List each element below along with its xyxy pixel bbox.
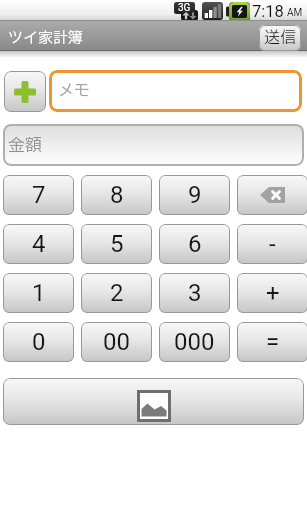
staticText: 9 <box>188 181 202 209</box>
button[interactable]: 9 <box>159 175 230 215</box>
button[interactable]: - <box>237 224 307 264</box>
button[interactable]: 6 <box>159 224 230 264</box>
staticText: 8 <box>110 181 124 209</box>
staticText: 金額 <box>8 133 42 158</box>
button[interactable] <box>3 378 304 425</box>
button[interactable]: 金額 <box>3 124 304 166</box>
staticText: 3G <box>178 2 191 14</box>
staticText: 7:18 <box>252 2 284 21</box>
button[interactable]: 7 <box>3 175 74 215</box>
button[interactable] <box>4 71 46 112</box>
staticText: 4 <box>32 230 46 258</box>
button[interactable]: 4 <box>3 224 74 264</box>
staticText: メモ <box>58 79 91 103</box>
button[interactable]: 送信 <box>259 25 301 51</box>
staticText: = <box>266 328 280 356</box>
staticText: ツイ家計簿 <box>8 27 84 49</box>
staticText: + <box>266 279 280 307</box>
button[interactable]: 5 <box>81 224 152 264</box>
button[interactable]: 0 <box>3 322 74 362</box>
staticText: 5 <box>110 230 124 258</box>
button[interactable]: 1 <box>3 273 74 313</box>
button[interactable]: + <box>237 273 307 313</box>
staticText: 3 <box>188 279 202 307</box>
button[interactable]: 2 <box>81 273 152 313</box>
button[interactable]: = <box>237 322 307 362</box>
staticText: 2 <box>110 279 124 307</box>
staticText: 0 <box>32 328 46 356</box>
button[interactable]: 3 <box>159 273 230 313</box>
button[interactable]: 00 <box>81 322 152 362</box>
button[interactable] <box>237 175 307 215</box>
staticText: 6 <box>188 230 202 258</box>
staticText: - <box>269 230 276 258</box>
button[interactable]: 8 <box>81 175 152 215</box>
staticText: 1 <box>32 279 46 307</box>
staticText: 送信 <box>264 26 297 50</box>
staticText: 00 <box>103 328 130 356</box>
staticText: AM <box>287 7 303 19</box>
staticText: 7 <box>32 181 46 209</box>
staticText: 000 <box>174 328 215 356</box>
button[interactable]: メモ <box>49 70 302 112</box>
button[interactable]: 000 <box>159 322 230 362</box>
